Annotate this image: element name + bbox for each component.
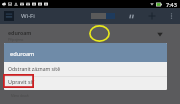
button[interactable]: Add network: [148, 12, 156, 20]
button[interactable]: eduroam: [0, 24, 180, 42]
staticText: Připojeno: [8, 37, 24, 42]
button[interactable]: Settings: [4, 11, 14, 21]
staticText: Mimo dosah: [11, 94, 29, 98]
staticText: eduroam: [10, 50, 35, 58]
button[interactable]: Scan: [129, 14, 134, 19]
staticText: eduroam: [8, 29, 32, 36]
button[interactable]: Upravit síť: [4, 77, 167, 90]
staticText: Wi-Fi: [21, 12, 35, 20]
staticText: Upravit síť: [8, 78, 34, 85]
staticText: Odstranit záznam sítě: [8, 66, 61, 73]
button[interactable]: Wi-Fi on: [91, 13, 115, 19]
button[interactable]: More options: [170, 13, 173, 19]
staticText: 7:43: [166, 1, 177, 8]
button[interactable]: Odstranit záznam sítě: [4, 62, 167, 76]
